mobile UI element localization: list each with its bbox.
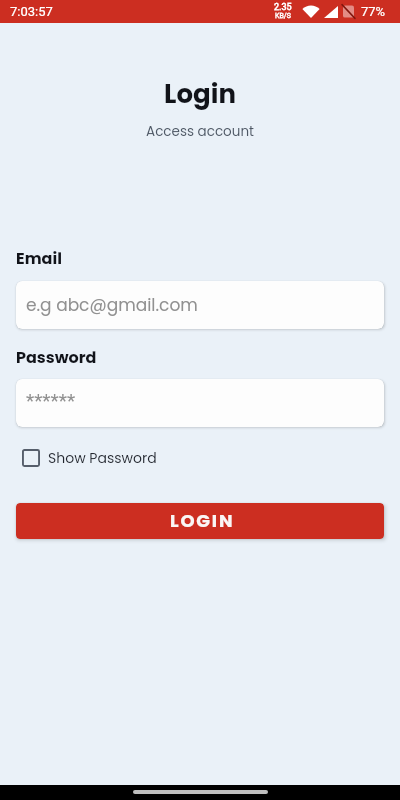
other: Wi-Fi [302,5,320,18]
button[interactable]: Email input [16,281,384,329]
staticText: 2.35 [274,2,292,13]
staticText: Access account [0,122,400,141]
button[interactable]: Show Password [16,448,157,468]
button[interactable]: LOGIN [16,503,384,539]
button[interactable]: Password input [16,379,384,427]
other: No SIM [343,5,354,18]
staticText: KB/S [275,12,291,20]
staticText: e.g abc@gmail.com [26,293,198,317]
staticText: ****** [26,389,76,411]
staticText: Show Password [48,448,157,468]
staticText: 7:03:57 [10,4,53,19]
staticText: Login [0,76,400,112]
staticText: LOGIN [170,508,235,533]
staticText: 77% [361,4,386,19]
other: Home [133,790,268,794]
other: Mobile signal [324,6,338,18]
staticText: Email [16,247,62,269]
staticText: Password [16,346,97,368]
